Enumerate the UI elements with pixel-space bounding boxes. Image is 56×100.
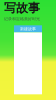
staticText: 新建故事	[20, 26, 36, 31]
staticText: 写故事	[4, 1, 40, 15]
staticText: 记录和定格美好时光	[4, 16, 40, 21]
